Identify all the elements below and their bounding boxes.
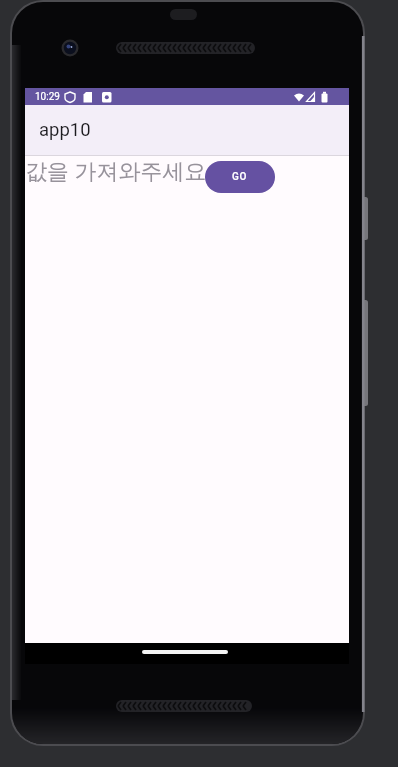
staticText: GO: [232, 171, 248, 183]
staticText: 값을 가져와주세요: [25, 158, 207, 186]
button[interactable]: GO: [205, 161, 275, 193]
staticText: app10: [39, 119, 91, 141]
staticText: 10:29: [35, 91, 60, 103]
